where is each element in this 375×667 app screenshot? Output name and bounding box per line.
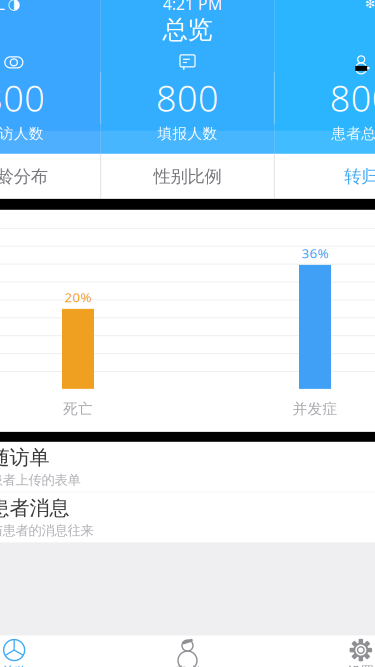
staticText: 800 <box>330 74 375 122</box>
staticText: 总览 <box>162 14 212 45</box>
staticText: 患者总数 <box>331 125 375 143</box>
button[interactable]: 总览 <box>0 635 101 667</box>
staticText: 年龄分布 <box>0 166 48 187</box>
staticText: 并发症 <box>292 400 337 418</box>
button[interactable]: 年龄分布 <box>0 154 100 199</box>
button[interactable]: 患者消息 <box>0 492 375 542</box>
staticText: 填报人数 <box>157 125 217 143</box>
staticText: 患者消息 <box>0 496 69 520</box>
staticText: 转归 <box>344 166 375 187</box>
staticText: 36% <box>301 244 328 262</box>
staticText: 总览 <box>1 664 27 667</box>
button[interactable]: 转归 <box>275 154 375 199</box>
staticText: 随访单 <box>0 445 49 470</box>
staticText: 死亡 <box>63 400 93 418</box>
staticText: 设置 <box>348 664 374 667</box>
button[interactable]: 患者 <box>101 635 274 667</box>
button[interactable]: 性别比例 <box>101 154 274 199</box>
button[interactable]: 随访单 <box>0 442 375 492</box>
staticText: 800 <box>0 74 45 122</box>
staticText: 20% <box>64 288 91 306</box>
staticText: 800 <box>156 74 219 122</box>
staticText: ❇ <box>365 0 375 11</box>
staticText: 性别比例 <box>153 166 221 187</box>
staticText: 患者上传的表单 <box>0 472 80 488</box>
staticText: 随访人数 <box>0 125 44 143</box>
staticText: 与患者的消息往来 <box>0 522 93 539</box>
staticText: 4:21 PM <box>163 0 223 14</box>
staticText: 患者 <box>174 664 200 667</box>
staticText: BELL <box>0 0 4 14</box>
button[interactable]: 设置 <box>274 635 375 667</box>
staticText: ◑ <box>7 0 20 12</box>
